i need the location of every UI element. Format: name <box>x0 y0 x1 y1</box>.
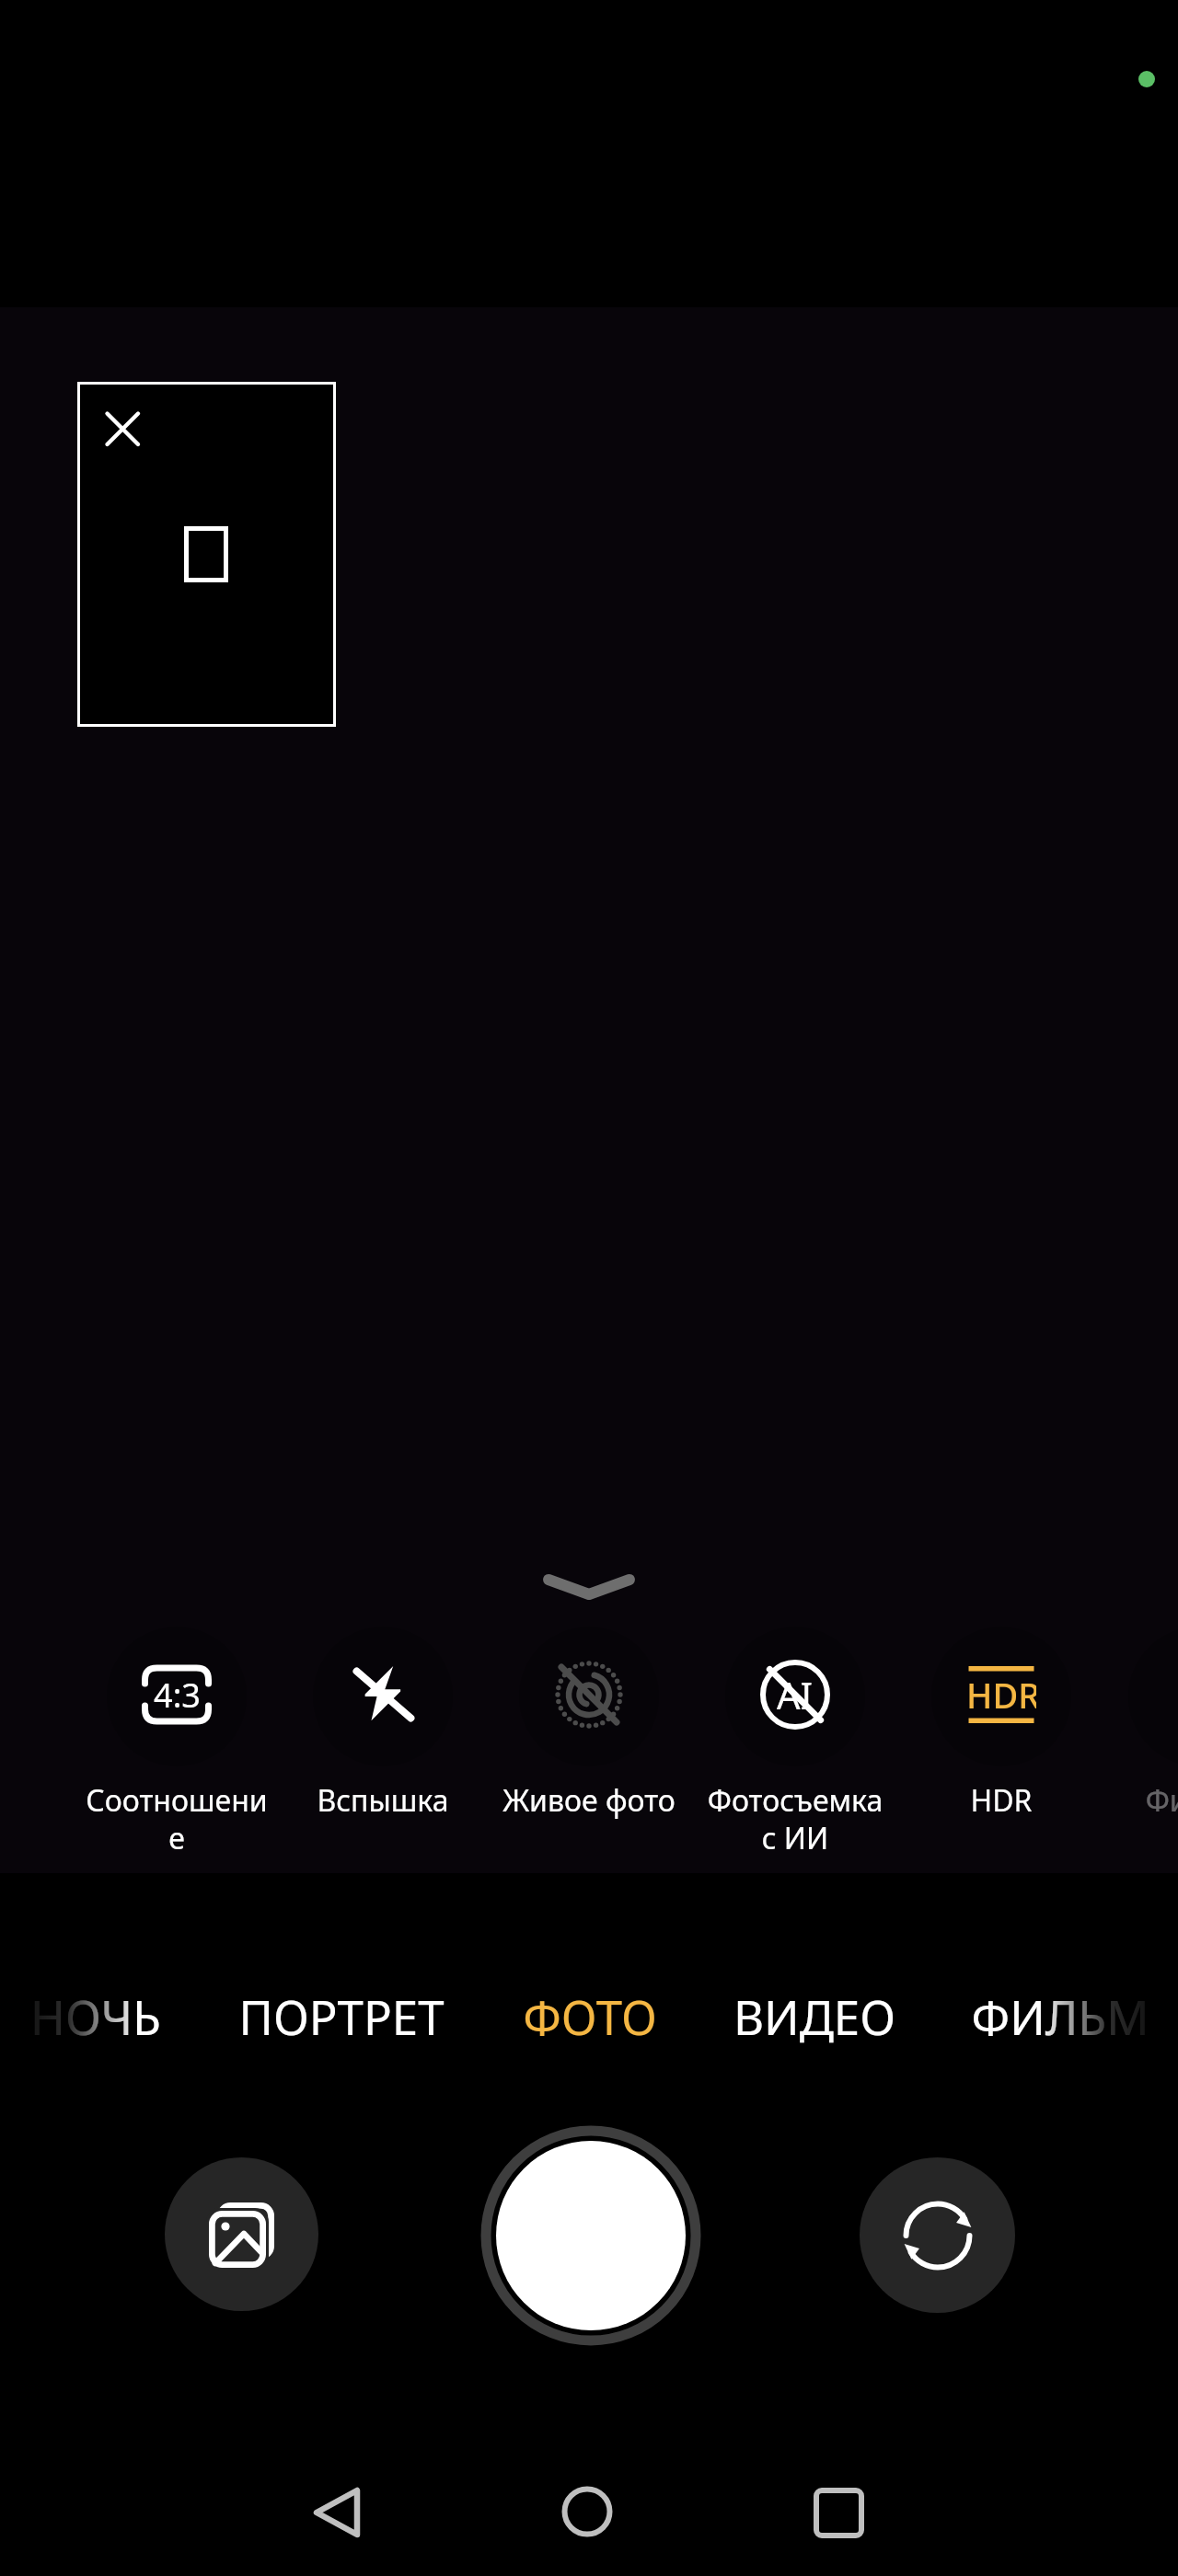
staticText: HDR <box>910 1780 1092 1821</box>
staticText: Живое фото <box>498 1780 680 1821</box>
staticText: Фотосъемка с ИИ <box>704 1780 886 1858</box>
staticText: Соотношение <box>86 1780 268 1858</box>
button[interactable]: Close <box>83 390 153 460</box>
button[interactable]: Вспышка <box>280 1627 486 1877</box>
staticText: HDR <box>966 1671 1036 1719</box>
staticText: ФОТО <box>461 1984 719 2048</box>
button[interactable]: Home <box>532 2456 642 2567</box>
staticText: ВИДЕО <box>686 1984 943 2048</box>
button[interactable]: Shutter <box>471 2116 710 2355</box>
staticText: Вспышка <box>292 1780 474 1821</box>
staticText: ФИЛЬМ <box>931 1984 1178 2048</box>
button[interactable]: Фильтр <box>1095 1627 1178 1877</box>
button[interactable]: НОЧЬ <box>0 1970 225 2062</box>
staticText: НОЧЬ <box>0 1984 225 2048</box>
button[interactable]: ПОРТРЕТ <box>213 1970 470 2062</box>
staticText: Фильтр <box>1107 1780 1178 1821</box>
staticText: AI <box>777 1670 814 1719</box>
button[interactable]: More settings <box>515 1555 663 1619</box>
staticText: ПОРТРЕТ <box>213 1984 470 2048</box>
button[interactable]: HDR <box>898 1627 1104 1877</box>
button[interactable]: 4:3 <box>74 1627 280 1877</box>
staticText: 4:3 <box>154 1673 201 1718</box>
button[interactable]: Gallery <box>165 2157 318 2311</box>
button[interactable]: Живое фото <box>486 1627 692 1877</box>
button[interactable]: ФОТО <box>461 1970 719 2062</box>
button[interactable]: AI <box>692 1627 898 1877</box>
button[interactable]: ФИЛЬМ <box>931 1970 1178 2062</box>
button[interactable]: ВИДЕО <box>686 1970 943 2062</box>
button[interactable]: Recents <box>783 2457 894 2568</box>
button[interactable]: Back <box>282 2457 392 2568</box>
button[interactable]: Switch camera <box>860 2157 1015 2313</box>
